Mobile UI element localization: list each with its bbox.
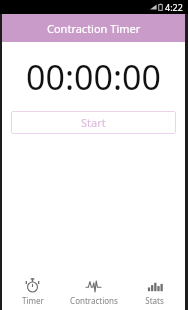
staticText: Contraction Timer [47,21,141,36]
staticText: Contractions [70,295,118,306]
button[interactable]: Contractions tab [63,274,124,310]
button[interactable]: Stats tab [124,274,185,310]
staticText: 00:00:00 [26,54,161,100]
staticText: Start [81,115,106,130]
button[interactable]: Start [11,111,176,134]
staticText: Stats [145,295,164,306]
staticText: Timer [22,295,44,306]
button[interactable]: Timer tab [2,274,63,310]
staticText: 4:22 [165,1,183,13]
